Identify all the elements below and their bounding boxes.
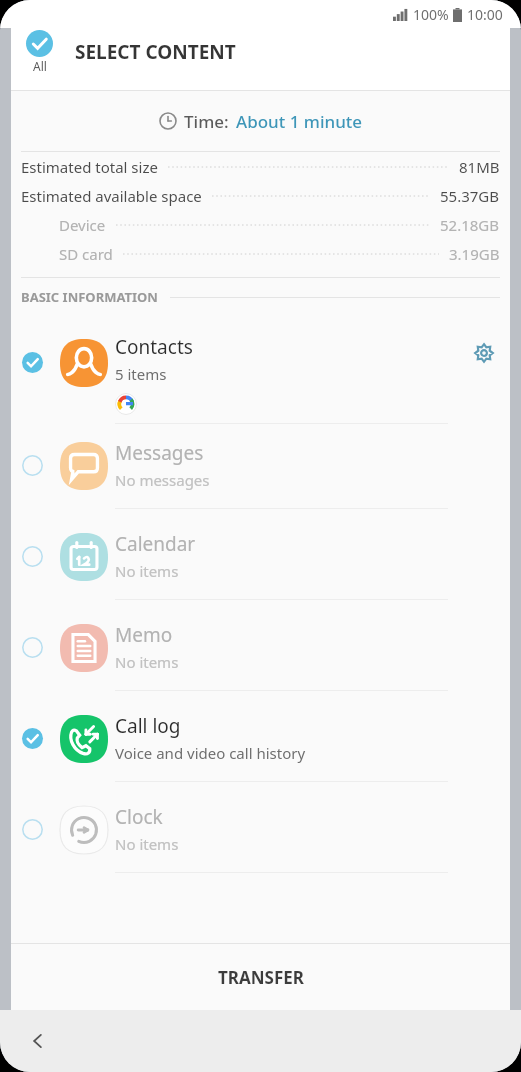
- button[interactable]: Contacts: [11, 316, 510, 424]
- staticText: Estimated available space: [21, 186, 202, 206]
- button[interactable]: Memo: [11, 606, 510, 697]
- staticText: About 1 minute: [236, 110, 363, 133]
- staticText: 55.37GB: [440, 186, 500, 206]
- staticText: BASIC INFORMATION: [21, 288, 158, 306]
- button[interactable]: Clock: [11, 788, 510, 879]
- staticText: Voice and video call history: [115, 743, 306, 763]
- button[interactable]: Contacts settings: [469, 338, 499, 368]
- staticText: 81MB: [459, 157, 500, 177]
- staticText: No items: [115, 561, 179, 581]
- button[interactable]: Call log: [11, 697, 510, 788]
- button[interactable]: Messages: [11, 424, 510, 515]
- staticText: No messages: [115, 470, 210, 490]
- staticText: Device: [59, 215, 106, 235]
- staticText: Time:: [184, 110, 229, 133]
- staticText: 10:00: [467, 5, 503, 24]
- staticText: SD card: [59, 244, 113, 264]
- staticText: All: [33, 58, 47, 74]
- staticText: TRANSFER: [218, 966, 304, 989]
- staticText: Contacts: [115, 334, 193, 360]
- staticText: 5 items: [115, 364, 167, 384]
- staticText: Clock: [115, 804, 163, 830]
- staticText: Calendar: [115, 531, 196, 557]
- button[interactable]: Calendar: [11, 515, 510, 606]
- staticText: 100%: [413, 5, 449, 24]
- staticText: Call log: [115, 713, 181, 739]
- staticText: 3.19GB: [449, 244, 500, 264]
- button[interactable]: Back: [22, 1025, 54, 1057]
- staticText: No items: [115, 652, 179, 672]
- staticText: 52.18GB: [440, 215, 500, 235]
- staticText: No items: [115, 834, 179, 854]
- staticText: Estimated total size: [21, 157, 158, 177]
- staticText: Messages: [115, 440, 204, 466]
- staticText: Memo: [115, 622, 173, 648]
- button[interactable]: All: [22, 28, 57, 76]
- staticText: SELECT CONTENT: [75, 39, 236, 65]
- button[interactable]: TRANSFER: [11, 944, 510, 1010]
